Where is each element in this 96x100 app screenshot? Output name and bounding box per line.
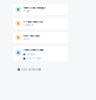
staticText: Trigger <box>23 10 30 13</box>
staticText: Action <box>23 38 29 41</box>
staticText: When Slack message <box>23 6 45 9</box>
button[interactable]: Add component <box>13 64 41 72</box>
button[interactable]: New Task result <box>13 32 68 43</box>
staticText: New Task result <box>23 34 40 37</box>
staticText: Then Create a Task <box>23 49 43 51</box>
staticText: Assignee <box>27 53 35 56</box>
staticText: Due in 3 days <box>27 57 41 60</box>
button[interactable]: Then Create a Task <box>13 46 68 61</box>
button[interactable]: When Slack message <box>13 4 68 15</box>
button[interactable]: If Issue Identified <box>13 18 68 29</box>
staticText: Add component <box>21 68 41 71</box>
staticText: If Issue Identified <box>23 20 42 23</box>
staticText: Condition <box>23 24 33 27</box>
